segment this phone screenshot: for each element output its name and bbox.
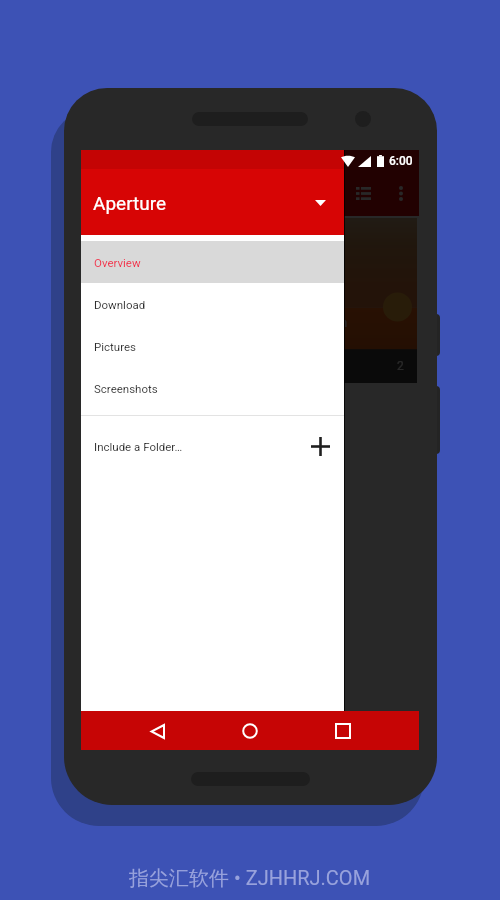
button[interactable]: Pictures [81,325,344,367]
staticText: Aperture [93,192,167,214]
staticText: Pictures [94,340,136,353]
button[interactable]: Aperture [81,150,344,235]
button[interactable]: Overview [81,241,344,283]
button[interactable]: More options [382,174,420,212]
button[interactable]: Include a Folder… [81,416,344,476]
staticText: Autumn [305,316,348,330]
button[interactable]: Back [140,714,174,748]
button[interactable]: List view [344,174,382,212]
staticText: Screenshots [94,382,158,395]
staticText: Overview [94,256,141,269]
staticText: Include a Folder… [94,440,183,453]
button[interactable]: Home [233,714,267,748]
button[interactable]: Screenshots [81,367,344,409]
staticText: Download [94,298,146,311]
staticText: 2 [397,359,404,373]
button[interactable]: Recents [326,714,360,748]
staticText: 6:00 [389,154,413,168]
staticText: 指尖汇软件 • ZJHHRJ.COM [129,866,371,891]
button[interactable]: Download [81,283,344,325]
